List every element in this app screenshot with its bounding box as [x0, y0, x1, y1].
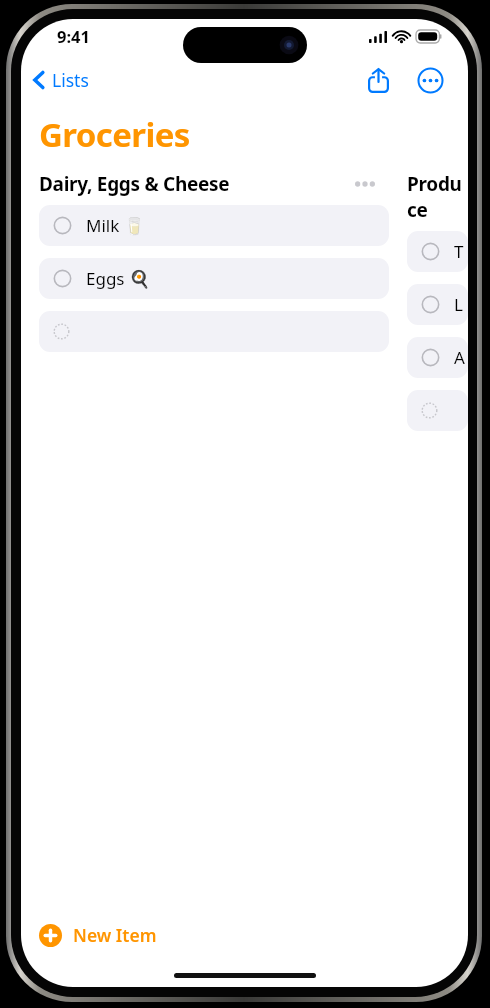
staticText: Lists — [52, 68, 89, 92]
staticText: Lettuce 🥬 — [454, 293, 456, 316]
staticText: Tomatoes 🍅 — [454, 240, 456, 263]
button[interactable]: Milk 🥛 — [39, 205, 389, 246]
button[interactable]: Eggs 🍳 — [39, 258, 389, 299]
staticText: Dairy, Eggs & Cheese — [39, 171, 230, 197]
button[interactable]: New Item — [21, 915, 177, 955]
button[interactable]: Lettuce 🥬 — [407, 284, 468, 325]
button[interactable]: Apples 🍎 — [407, 337, 468, 378]
button[interactable]: Tomatoes 🍅 — [407, 231, 468, 272]
button[interactable]: Share — [362, 62, 395, 99]
staticText: Eggs 🍳 — [86, 267, 151, 290]
button[interactable]: Section options — [347, 173, 383, 195]
button[interactable]: Lists — [21, 64, 99, 96]
staticText: Milk 🥛 — [86, 214, 145, 237]
staticText: 9:41 — [57, 25, 90, 47]
staticText: Groceries — [39, 112, 190, 157]
button[interactable]: More options — [413, 63, 448, 98]
staticText: New Item — [73, 923, 157, 947]
staticText: Produce — [407, 171, 468, 223]
staticText: Apples 🍎 — [454, 346, 456, 369]
button[interactable] — [407, 390, 468, 431]
